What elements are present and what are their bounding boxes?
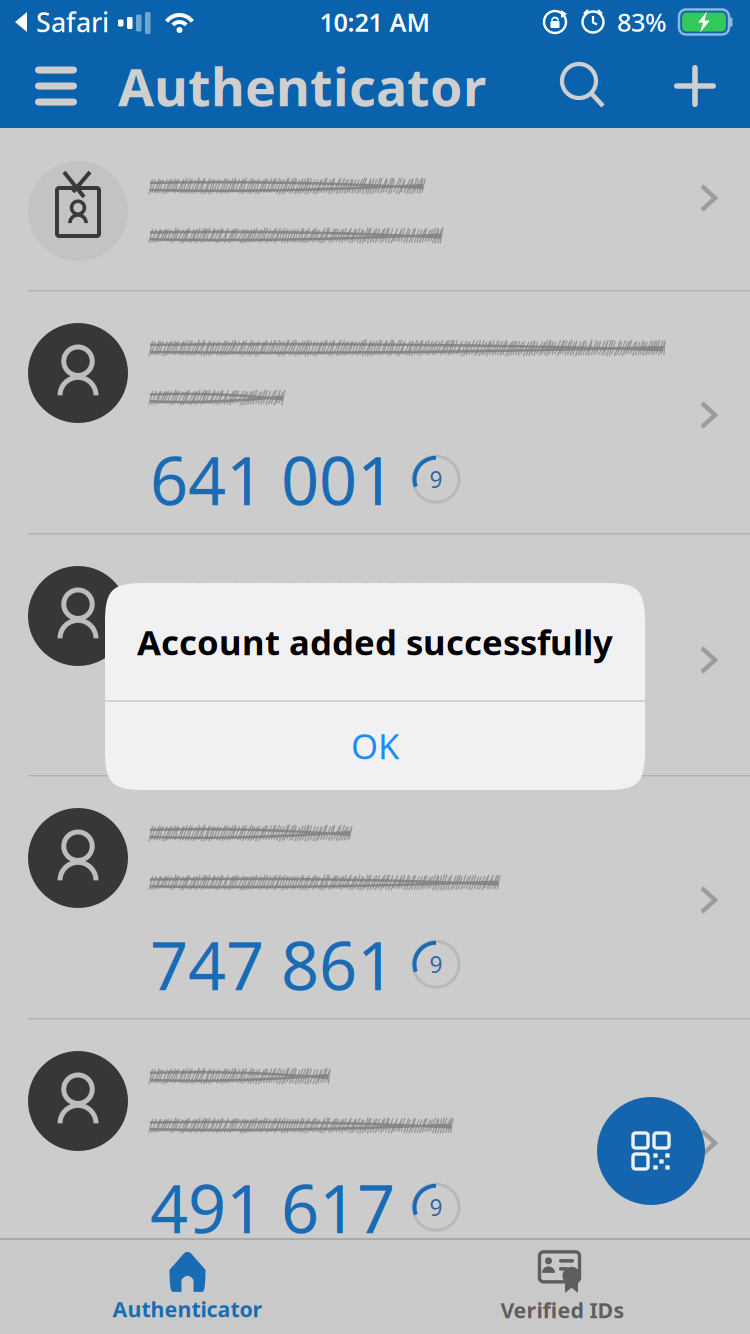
staticText: Verified IDs — [500, 1296, 624, 1324]
staticText: 83% — [617, 5, 667, 39]
staticText: 641 001 — [150, 435, 395, 523]
staticText: Authenticator — [118, 51, 486, 121]
staticText: 491 617 — [150, 1163, 395, 1251]
button[interactable]: Verified IDs — [375, 1240, 750, 1334]
staticText: Authenticator — [112, 1295, 262, 1323]
staticText: 9 — [429, 949, 442, 979]
button[interactable]: OK — [105, 702, 645, 790]
staticText: 747 861 — [150, 920, 395, 1008]
staticText: OK — [351, 723, 399, 769]
button[interactable]: 641 001 — [0, 290, 750, 533]
button[interactable]: Authenticator — [0, 1240, 375, 1334]
button[interactable]: Menu — [26, 56, 86, 116]
button[interactable]: 491 617 — [0, 1018, 750, 1238]
staticText: 802 413 — [150, 678, 395, 766]
button[interactable]: 802 413 — [0, 533, 750, 775]
button[interactable]: Search — [550, 52, 618, 120]
button[interactable]: 747 861 — [0, 775, 750, 1018]
staticText: Account added successfully — [137, 619, 613, 665]
staticText: 9 — [429, 1192, 442, 1222]
staticText: 10:21 AM — [319, 5, 430, 39]
button[interactable]: Scan QR code — [597, 1097, 705, 1205]
staticText: 9 — [429, 464, 442, 494]
button[interactable] — [0, 128, 750, 290]
staticText: Safari — [29, 4, 109, 40]
button[interactable]: Add account — [661, 52, 729, 120]
